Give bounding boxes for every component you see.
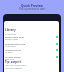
staticText: Shared items now — [5, 42, 26, 45]
staticText: Pick a preview to start — [0, 7, 64, 11]
staticText: older stuff — [5, 58, 15, 61]
staticText: Tap a row to open detail — [5, 64, 27, 67]
button[interactable]: Recent files here — [5, 35, 58, 42]
staticText: updated today — [5, 38, 18, 41]
staticText: page and preview it. — [5, 67, 23, 70]
button[interactable]: Shared items now — [5, 42, 58, 49]
staticText: Archive folder — [5, 55, 21, 58]
staticText: 3 new items — [5, 45, 16, 48]
button[interactable]: Archive folder — [5, 55, 58, 62]
staticText: 4 collections — [5, 33, 16, 36]
staticText: Tip: swipe it — [5, 60, 22, 64]
staticText: Favourites list — [5, 48, 21, 51]
staticText: Quick Preview — [0, 4, 64, 8]
button[interactable]: Favourites list — [5, 48, 58, 55]
staticText: Library — [5, 28, 16, 32]
staticText: Recent files here — [5, 35, 24, 38]
staticText: 12 items — [5, 51, 13, 54]
